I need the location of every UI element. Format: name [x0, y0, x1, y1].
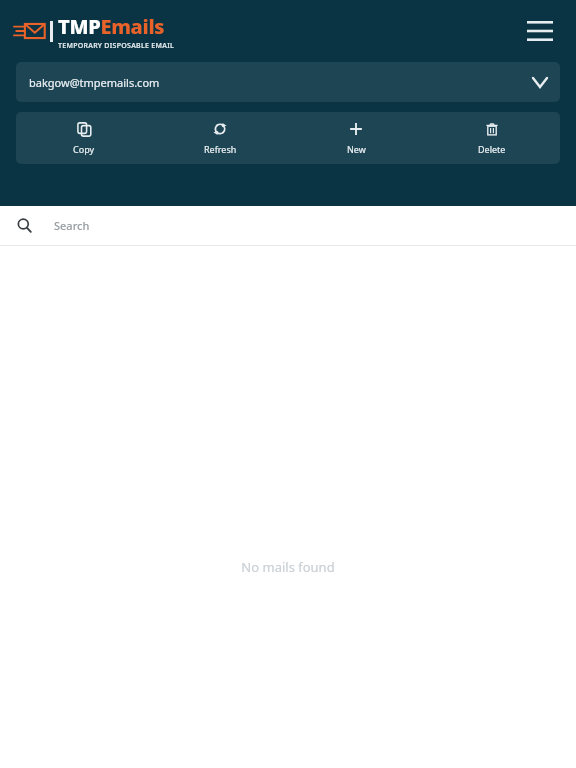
button[interactable]: Delete — [424, 112, 560, 164]
staticText: New — [347, 143, 366, 155]
staticText: Delete — [478, 143, 506, 155]
staticText: Search — [54, 218, 90, 233]
staticText: No mails found — [241, 558, 335, 576]
button[interactable]: bakgow@tmpemails.com — [16, 62, 560, 102]
button[interactable]: Refresh — [152, 112, 288, 164]
staticText: Refresh — [204, 143, 237, 155]
staticText: TEMPORARY DISPOSABLE EMAIL — [58, 41, 174, 51]
button[interactable]: Copy — [16, 112, 152, 164]
staticText: Copy — [73, 143, 95, 155]
button[interactable]: New — [288, 112, 424, 164]
staticText: bakgow@tmpemails.com — [29, 75, 160, 90]
button[interactable]: Search — [0, 206, 576, 245]
staticText: TMPEmails — [58, 13, 165, 40]
button[interactable]: Open menu — [518, 9, 562, 53]
